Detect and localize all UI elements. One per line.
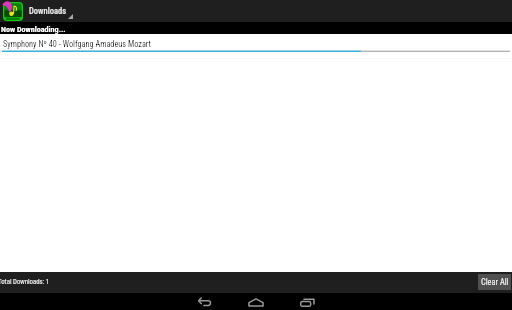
staticText: Total Downloads: 1 <box>0 278 50 286</box>
button[interactable]: Clear All <box>478 274 511 290</box>
button[interactable]: Recent apps <box>282 293 334 310</box>
staticText: Clear All <box>481 277 509 287</box>
button[interactable]: Back <box>178 293 230 310</box>
staticText: Symphony Nº 40 - Wolfgang Amadeus Mozart <box>3 39 152 49</box>
staticText: Now Downloading... <box>1 24 66 33</box>
button[interactable]: Home <box>230 293 282 310</box>
button[interactable]: Symphony Nº 40 - Wolfgang Amadeus Mozart <box>0 34 512 59</box>
staticText: Downloads <box>29 6 67 16</box>
